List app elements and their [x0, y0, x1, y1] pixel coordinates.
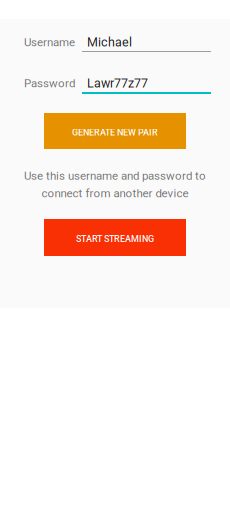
button[interactable]: GENERATE NEW PAIR [44, 113, 186, 149]
button[interactable]: START STREAMING [44, 219, 186, 256]
staticText: Lawr77z77 [87, 76, 148, 91]
staticText: START STREAMING [76, 234, 154, 244]
staticText: GENERATE NEW PAIR [72, 127, 158, 138]
staticText: Michael [87, 35, 132, 50]
staticText: Use this username and password to [24, 169, 206, 182]
staticText: Username [24, 35, 75, 49]
staticText: Password [24, 76, 75, 90]
staticText: connect from another device [41, 186, 188, 200]
